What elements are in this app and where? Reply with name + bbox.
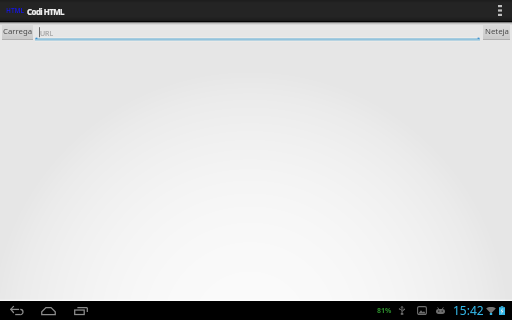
button[interactable]: More options <box>489 0 511 21</box>
button[interactable]: Back <box>5 301 27 320</box>
button[interactable]: URL input field <box>35 24 480 41</box>
staticText: Codi HTML <box>27 7 64 18</box>
staticText: URL <box>40 29 54 39</box>
staticText: 15:42 <box>453 302 484 318</box>
button[interactable]: Recent apps <box>70 301 92 320</box>
button[interactable]: Carrega <box>2 24 33 40</box>
staticText: Carrega <box>3 26 33 37</box>
button[interactable]: Home <box>37 301 59 320</box>
staticText: HTML <box>6 6 25 15</box>
staticText: Neteja <box>485 26 509 37</box>
staticText: 81% <box>377 306 392 316</box>
button[interactable]: Neteja <box>483 24 510 40</box>
